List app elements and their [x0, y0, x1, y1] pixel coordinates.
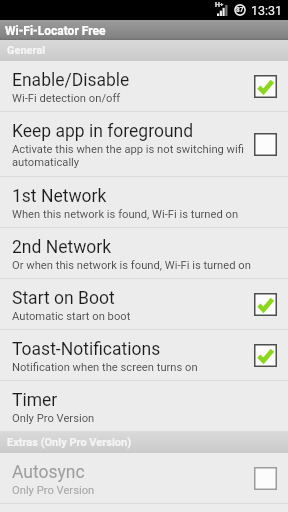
staticText: Enable/Disable — [12, 70, 130, 91]
staticText: Extras (Only Pro Version) — [7, 436, 132, 449]
staticText: Wi-Fi detection on/off — [12, 92, 121, 105]
staticText: Keep app in foreground — [12, 121, 194, 142]
button[interactable]: Autosync — [0, 453, 288, 503]
staticText: 1st Network — [12, 186, 107, 207]
button[interactable]: Toast-Notifications — [0, 330, 288, 380]
staticText: General — [7, 44, 46, 57]
staticText: 2nd Network — [12, 237, 112, 258]
staticText: 13:31 — [251, 3, 283, 18]
staticText: Start on Boot — [12, 288, 115, 309]
staticText: Notification when the screen turns on — [12, 361, 198, 374]
button[interactable]: Enable/Disable — [0, 61, 288, 111]
button[interactable]: Keep app in foreground — [0, 112, 288, 176]
staticText: Only Pro Version — [12, 484, 95, 497]
button[interactable]: 1st Network — [0, 177, 288, 227]
staticText: Toast-Notifications — [12, 339, 161, 360]
staticText: Autosync — [12, 462, 85, 483]
staticText: + — [220, 0, 224, 7]
staticText: Or when this network is found, Wi-Fi is … — [12, 259, 251, 272]
button[interactable]: 2nd Network — [0, 228, 288, 278]
button[interactable]: Timer — [0, 381, 288, 431]
staticText: 87 — [236, 6, 244, 14]
staticText: Wi-Fi-Locator Free — [5, 24, 106, 38]
staticText: Only Pro Version — [12, 412, 95, 425]
staticText: Activate this when the app is not switch… — [12, 143, 253, 169]
staticText: Automatic start on boot — [12, 310, 131, 323]
staticText: H — [215, 1, 220, 9]
staticText: When this network is found, Wi-Fi is tur… — [12, 208, 239, 221]
staticText: Timer — [12, 390, 58, 411]
button[interactable]: Start on Boot — [0, 279, 288, 329]
